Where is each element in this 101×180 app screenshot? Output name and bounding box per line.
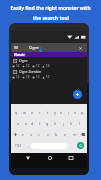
button[interactable]: Back bbox=[23, 153, 32, 162]
staticText: a bbox=[17, 121, 20, 126]
button[interactable]: Menu bbox=[12, 43, 19, 52]
button[interactable]: Clear bbox=[77, 45, 83, 51]
staticText: 12 bbox=[26, 75, 30, 79]
staticText: f bbox=[39, 121, 41, 126]
button[interactable]: o bbox=[72, 107, 79, 118]
staticText: y bbox=[54, 110, 56, 115]
button[interactable]: a bbox=[15, 118, 22, 129]
staticText: the search tool bbox=[33, 15, 69, 22]
button[interactable]: i bbox=[65, 107, 72, 118]
button[interactable]: y bbox=[51, 107, 58, 118]
button[interactable]: Ogre bbox=[11, 57, 87, 68]
staticText: q bbox=[15, 110, 18, 115]
button[interactable]: h bbox=[51, 118, 59, 129]
button[interactable]: Backspace bbox=[79, 129, 87, 140]
staticText: e bbox=[31, 110, 34, 115]
staticText: h bbox=[54, 121, 57, 126]
button[interactable]: m bbox=[70, 129, 79, 140]
staticText: p bbox=[81, 110, 84, 115]
staticText: z bbox=[22, 132, 24, 137]
staticText: t bbox=[47, 110, 49, 115]
button[interactable]: k bbox=[67, 118, 75, 129]
staticText: Ogre Zombie bbox=[19, 69, 42, 74]
button[interactable]: e bbox=[28, 107, 36, 118]
button[interactable]: Search bbox=[77, 142, 84, 149]
button[interactable]: p bbox=[79, 107, 86, 118]
button[interactable]: r bbox=[36, 107, 44, 118]
staticText: 12 bbox=[36, 64, 40, 68]
staticText: v bbox=[47, 132, 49, 137]
staticText: w bbox=[23, 110, 26, 115]
button[interactable]: w bbox=[20, 107, 28, 118]
button[interactable]: s bbox=[22, 118, 29, 129]
button[interactable]: Shift bbox=[11, 129, 19, 140]
button[interactable]: x bbox=[27, 129, 35, 140]
button[interactable]: Symbols bbox=[11, 140, 25, 151]
button[interactable]: u bbox=[58, 107, 65, 118]
button[interactable]: Recents bbox=[66, 153, 75, 162]
button[interactable]: Add bbox=[73, 90, 82, 99]
button[interactable]: Ogre Zombie bbox=[11, 68, 87, 79]
staticText: i bbox=[68, 110, 69, 115]
staticText: u bbox=[60, 110, 63, 115]
button[interactable]: d bbox=[29, 118, 36, 129]
button[interactable]: b bbox=[52, 129, 61, 140]
staticText: Easily find the right monster with bbox=[10, 5, 91, 12]
staticText: o bbox=[74, 110, 77, 115]
button[interactable]: Monster bbox=[14, 53, 26, 57]
button[interactable]: j bbox=[59, 118, 67, 129]
button[interactable]: Comma bbox=[25, 140, 31, 151]
staticText: b bbox=[55, 132, 58, 137]
staticText: c bbox=[38, 132, 40, 137]
button[interactable]: t bbox=[44, 107, 51, 118]
button[interactable]: l bbox=[75, 118, 83, 129]
staticText: r bbox=[39, 110, 41, 115]
staticText: Ogre bbox=[19, 58, 28, 63]
staticText: j bbox=[63, 121, 64, 126]
staticText: 12 bbox=[36, 75, 40, 79]
staticText: Ogre bbox=[29, 45, 39, 51]
staticText: n bbox=[64, 132, 67, 137]
button[interactable]: Home bbox=[45, 153, 54, 162]
staticText: 12 bbox=[16, 75, 20, 79]
button[interactable]: Space bbox=[31, 143, 67, 149]
staticText: . bbox=[70, 144, 71, 148]
staticText: g bbox=[46, 121, 49, 126]
staticText: ?123 bbox=[15, 144, 22, 148]
staticText: 12 bbox=[26, 64, 30, 68]
staticText: 12 bbox=[46, 64, 50, 68]
staticText: m bbox=[73, 132, 77, 137]
staticText: k bbox=[70, 121, 73, 126]
button[interactable]: z bbox=[19, 129, 27, 140]
button[interactable]: q bbox=[12, 107, 20, 118]
button[interactable]: f bbox=[36, 118, 43, 129]
staticText: 12 bbox=[46, 75, 50, 79]
button[interactable]: g bbox=[43, 118, 51, 129]
staticText: s bbox=[25, 121, 27, 126]
button[interactable]: v bbox=[43, 129, 52, 140]
staticText: d bbox=[31, 121, 34, 126]
staticText: x bbox=[30, 132, 33, 137]
staticText: l bbox=[79, 121, 80, 126]
button[interactable]: c bbox=[35, 129, 43, 140]
button[interactable]: n bbox=[61, 129, 70, 140]
staticText: , bbox=[28, 144, 29, 148]
staticText: 12 bbox=[16, 64, 20, 68]
staticText: Monster bbox=[14, 53, 26, 57]
